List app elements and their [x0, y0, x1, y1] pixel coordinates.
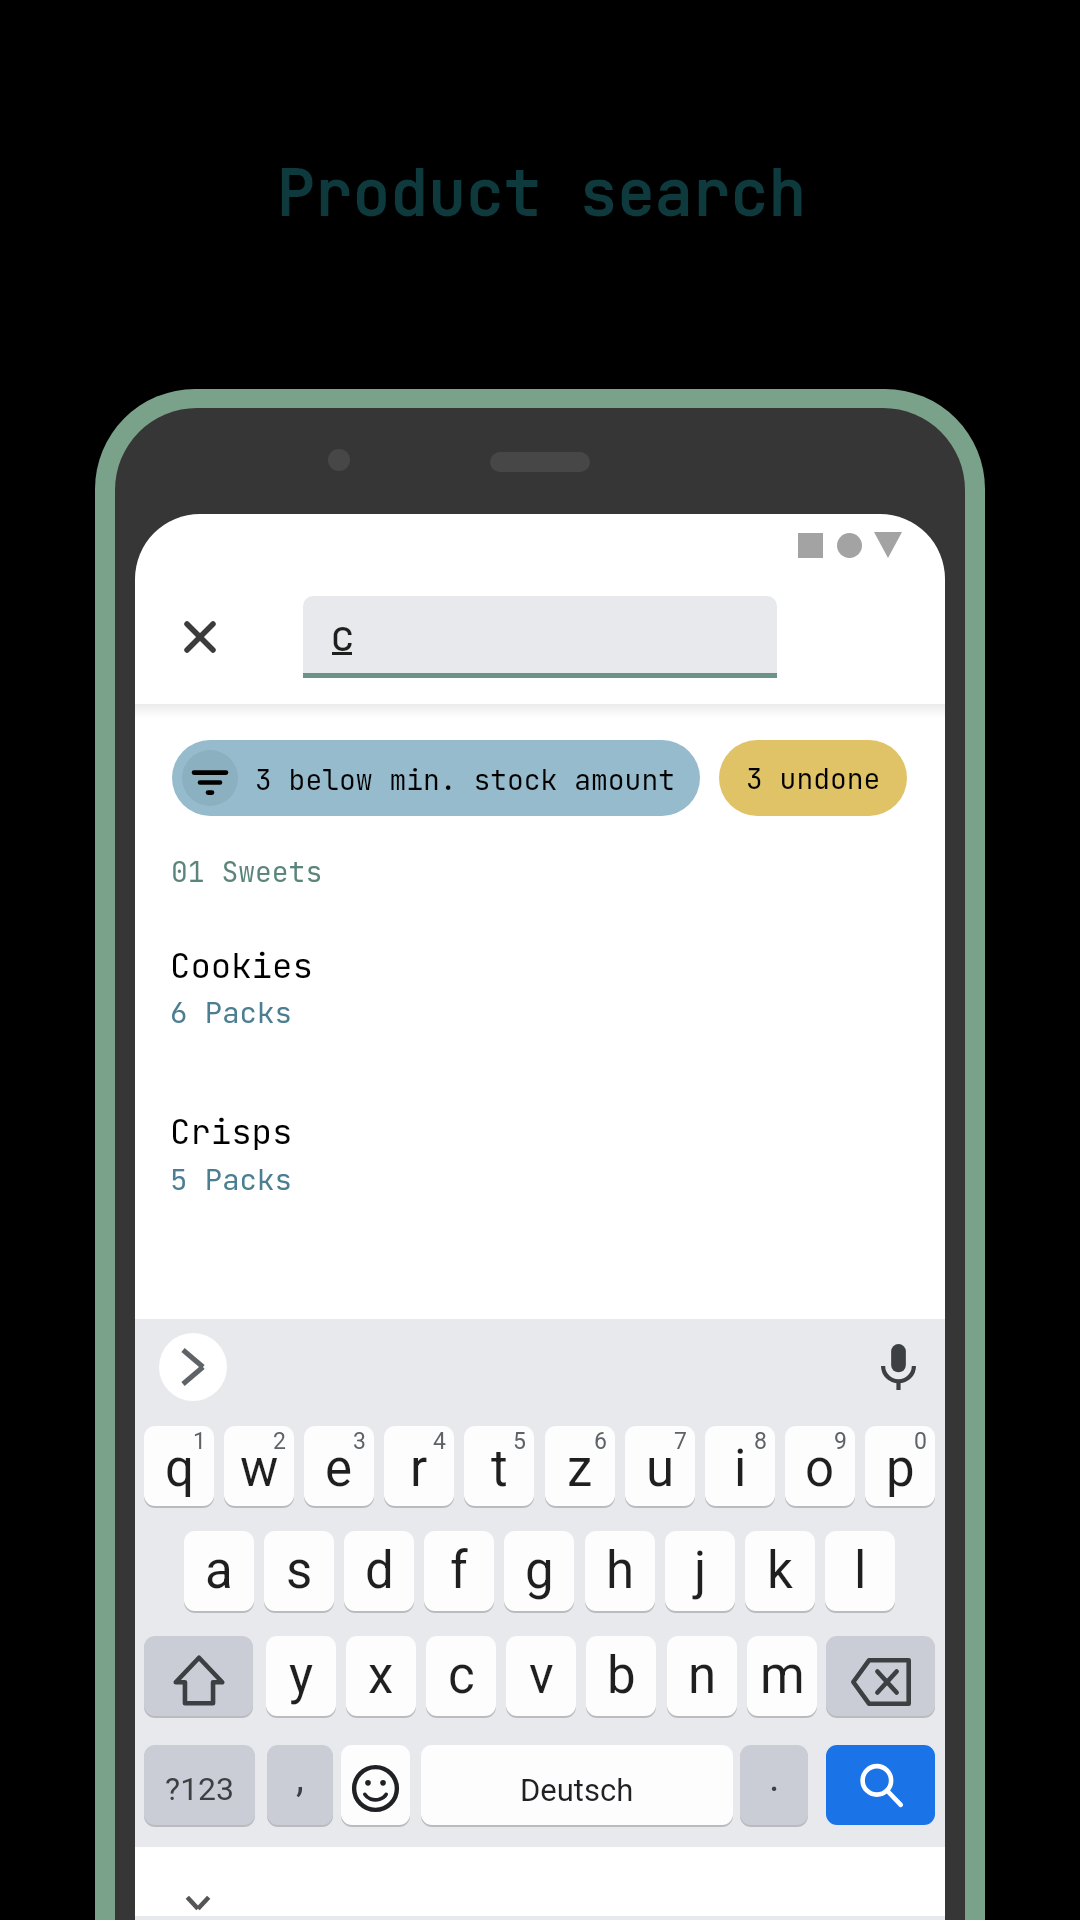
staticText: 6: [594, 1428, 607, 1455]
staticText: k: [767, 1541, 793, 1601]
staticText: 5: [513, 1428, 526, 1455]
staticText: c: [448, 1646, 475, 1706]
staticText: 3 below min. stock amount: [255, 761, 676, 798]
staticText: Crisps: [170, 1109, 293, 1154]
staticText: t: [491, 1439, 508, 1499]
staticText: m: [760, 1646, 805, 1706]
button[interactable]: t: [464, 1426, 534, 1506]
staticText: 6 Packs: [170, 993, 292, 1031]
staticText: f: [450, 1541, 468, 1601]
button[interactable]: p: [865, 1426, 935, 1506]
button[interactable]: v: [506, 1636, 576, 1716]
staticText: 9: [834, 1428, 847, 1455]
staticText: v: [529, 1646, 554, 1706]
button[interactable]: Crisps: [135, 1083, 945, 1223]
staticText: e: [325, 1439, 353, 1499]
button[interactable]: d: [344, 1531, 414, 1611]
button[interactable]: u: [625, 1426, 695, 1506]
staticText: Product search: [277, 151, 807, 234]
staticText: x: [368, 1646, 394, 1706]
staticText: i: [734, 1439, 747, 1499]
staticText: d: [365, 1541, 394, 1601]
button[interactable]: y: [266, 1636, 336, 1716]
staticText: z: [567, 1439, 593, 1499]
staticText: h: [606, 1541, 635, 1601]
staticText: 5 Packs: [170, 1160, 292, 1198]
button[interactable]: Show more suggestions: [159, 1333, 227, 1401]
staticText: a: [205, 1541, 233, 1601]
staticText: w: [240, 1439, 279, 1499]
button[interactable]: q: [144, 1426, 214, 1506]
staticText: Cookies: [170, 943, 313, 988]
staticText: j: [694, 1541, 707, 1601]
button[interactable]: Search: [826, 1745, 935, 1825]
button[interactable]: h: [585, 1531, 655, 1611]
staticText: 01 Sweets: [171, 853, 323, 890]
button[interactable]: j: [665, 1531, 735, 1611]
button[interactable]: Shift: [144, 1636, 253, 1716]
button[interactable]: c: [426, 1636, 496, 1716]
staticText: s: [286, 1541, 313, 1601]
staticText: 1: [193, 1428, 206, 1455]
staticText: 2: [273, 1428, 286, 1455]
button[interactable]: k: [745, 1531, 815, 1611]
button[interactable]: a: [184, 1531, 254, 1611]
staticText: c: [330, 608, 356, 663]
staticText: o: [805, 1439, 835, 1499]
button[interactable]: n: [667, 1636, 737, 1716]
button[interactable]: e: [304, 1426, 374, 1506]
staticText: q: [165, 1439, 194, 1499]
staticText: y: [289, 1646, 314, 1706]
button[interactable]: x: [346, 1636, 416, 1716]
button[interactable]: 3 below min. stock amount: [172, 740, 700, 816]
button[interactable]: Backspace: [826, 1636, 935, 1716]
button[interactable]: Hide keyboard: [163, 1868, 233, 1920]
button[interactable]: .: [740, 1745, 808, 1825]
button[interactable]: g: [504, 1531, 574, 1611]
button[interactable]: z: [545, 1426, 615, 1506]
staticText: g: [525, 1541, 554, 1601]
staticText: ,: [296, 1754, 304, 1801]
button[interactable]: o: [785, 1426, 855, 1506]
button[interactable]: Emoji: [341, 1745, 410, 1825]
button[interactable]: 3 undone: [719, 740, 907, 816]
staticText: ?123: [165, 1770, 235, 1808]
button[interactable]: w: [224, 1426, 294, 1506]
staticText: 8: [754, 1428, 767, 1455]
staticText: u: [646, 1439, 675, 1499]
staticText: r: [410, 1439, 428, 1499]
button[interactable]: c: [303, 596, 777, 673]
staticText: Deutsch: [520, 1772, 634, 1808]
staticText: .: [769, 1754, 780, 1801]
staticText: 3: [353, 1428, 366, 1455]
button[interactable]: l: [825, 1531, 895, 1611]
staticText: b: [607, 1646, 636, 1706]
button[interactable]: ,: [267, 1745, 333, 1825]
button[interactable]: i: [705, 1426, 775, 1506]
button[interactable]: ?123: [144, 1745, 255, 1825]
staticText: p: [886, 1439, 915, 1499]
staticText: 3 undone: [746, 760, 881, 797]
button[interactable]: Close search: [159, 596, 240, 677]
button[interactable]: s: [264, 1531, 334, 1611]
staticText: 4: [433, 1428, 446, 1455]
staticText: n: [688, 1646, 717, 1706]
button[interactable]: f: [424, 1531, 494, 1611]
button[interactable]: Deutsch: [421, 1745, 733, 1825]
staticText: 7: [674, 1428, 687, 1455]
button[interactable]: Voice input: [864, 1333, 932, 1401]
staticText: 0: [914, 1428, 927, 1455]
button[interactable]: m: [747, 1636, 817, 1716]
button[interactable]: b: [586, 1636, 656, 1716]
button[interactable]: r: [384, 1426, 454, 1506]
staticText: l: [854, 1541, 867, 1601]
button[interactable]: Cookies: [135, 917, 945, 1057]
